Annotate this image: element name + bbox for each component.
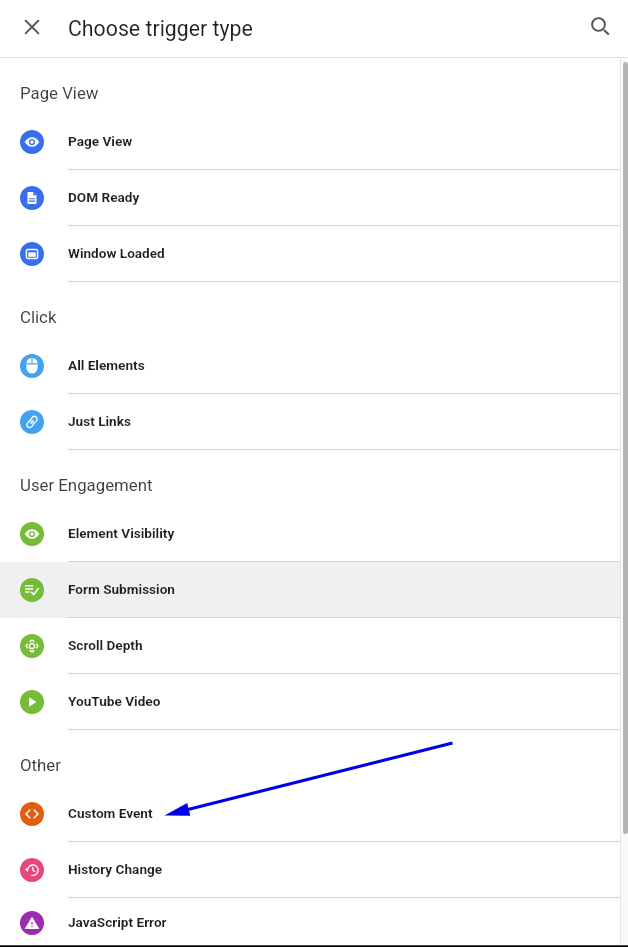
- staticText: Page View: [20, 83, 99, 103]
- staticText: Scroll Depth: [68, 637, 143, 653]
- button[interactable]: Element Visibility: [0, 506, 628, 562]
- staticText: User Engagement: [20, 475, 153, 495]
- button[interactable]: History Change: [0, 842, 628, 898]
- button[interactable]: Search: [578, 9, 618, 49]
- staticText: Form Submission: [68, 581, 175, 597]
- staticText: All Elements: [68, 357, 145, 373]
- staticText: Just Links: [68, 413, 131, 429]
- button[interactable]: All Elements: [0, 338, 628, 394]
- button[interactable]: Window Loaded: [0, 226, 628, 282]
- staticText: DOM Ready: [68, 189, 140, 205]
- button[interactable]: Custom Event: [0, 786, 628, 842]
- button[interactable]: JavaScript Error: [0, 898, 628, 947]
- button[interactable]: Scroll Depth: [0, 618, 628, 674]
- staticText: Other: [20, 755, 61, 775]
- staticText: Choose trigger type: [68, 16, 253, 41]
- staticText: Click: [20, 307, 57, 327]
- button[interactable]: Just Links: [0, 394, 628, 450]
- button[interactable]: YouTube Video: [0, 674, 628, 730]
- button[interactable]: Form Submission: [0, 562, 628, 618]
- button[interactable]: Close: [12, 9, 52, 49]
- staticText: Page View: [68, 133, 133, 149]
- staticText: History Change: [68, 861, 163, 877]
- button[interactable]: DOM Ready: [0, 170, 628, 226]
- staticText: JavaScript Error: [68, 914, 167, 930]
- staticText: YouTube Video: [68, 693, 161, 709]
- staticText: Window Loaded: [68, 245, 165, 261]
- button[interactable]: Page View: [0, 114, 628, 170]
- staticText: Custom Event: [68, 805, 153, 821]
- staticText: Element Visibility: [68, 525, 175, 541]
